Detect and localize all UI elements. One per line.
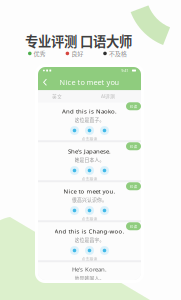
staticText: 点击跟读 bbox=[81, 136, 97, 141]
staticText: 他是韩国人。 bbox=[74, 274, 104, 281]
staticText: 这位是昌宇。 bbox=[74, 236, 104, 243]
staticText: 点击跟读 bbox=[81, 216, 97, 221]
staticText: 已读 bbox=[129, 183, 137, 189]
staticText: Nice to meet you. bbox=[63, 187, 115, 195]
staticText: She's Japanese. bbox=[68, 147, 111, 155]
staticText: 很高兴认识你。 bbox=[72, 196, 107, 203]
staticText: 点击跟读 bbox=[81, 176, 97, 181]
staticText: 已读 bbox=[129, 223, 137, 229]
staticText: 优秀 bbox=[34, 49, 46, 58]
staticText: 这位是直子。 bbox=[74, 116, 104, 123]
staticText: 专业评测 口语大师 bbox=[25, 31, 132, 50]
staticText: 她是日本人。 bbox=[74, 156, 104, 163]
staticText: 9:41 bbox=[121, 68, 128, 73]
staticText: 已读 bbox=[129, 143, 137, 149]
staticText: He's Korean. bbox=[72, 265, 107, 273]
staticText: AI评测 bbox=[101, 93, 115, 100]
staticText: 良好 bbox=[71, 49, 83, 58]
staticText: 不及格 bbox=[109, 49, 127, 58]
staticText: 英文 bbox=[52, 93, 62, 100]
staticText: 点击跟读 bbox=[81, 256, 97, 261]
staticText: Nice to meet you bbox=[59, 77, 119, 87]
staticText: 已读 bbox=[129, 103, 137, 109]
staticText: And this is Naoko. bbox=[62, 107, 117, 115]
staticText: And this is Chang-woo. bbox=[54, 227, 124, 235]
